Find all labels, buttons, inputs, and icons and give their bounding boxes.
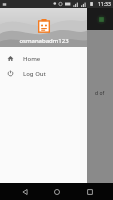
button[interactable]: Home <box>0 51 87 66</box>
staticText: osmanabadm123 <box>19 37 69 45</box>
button[interactable]: Home <box>48 183 65 200</box>
button[interactable]: Close navigation drawer <box>0 0 113 200</box>
staticText: Log Out <box>23 70 46 78</box>
button[interactable]: Back <box>16 183 33 200</box>
button[interactable]: Log Out <box>0 66 87 81</box>
button[interactable]: Status indicator <box>95 13 107 25</box>
staticText: d of <box>95 90 105 97</box>
staticText: Home <box>23 55 41 63</box>
staticText: 11:33 <box>98 1 111 8</box>
button[interactable]: Recent apps <box>81 183 98 200</box>
